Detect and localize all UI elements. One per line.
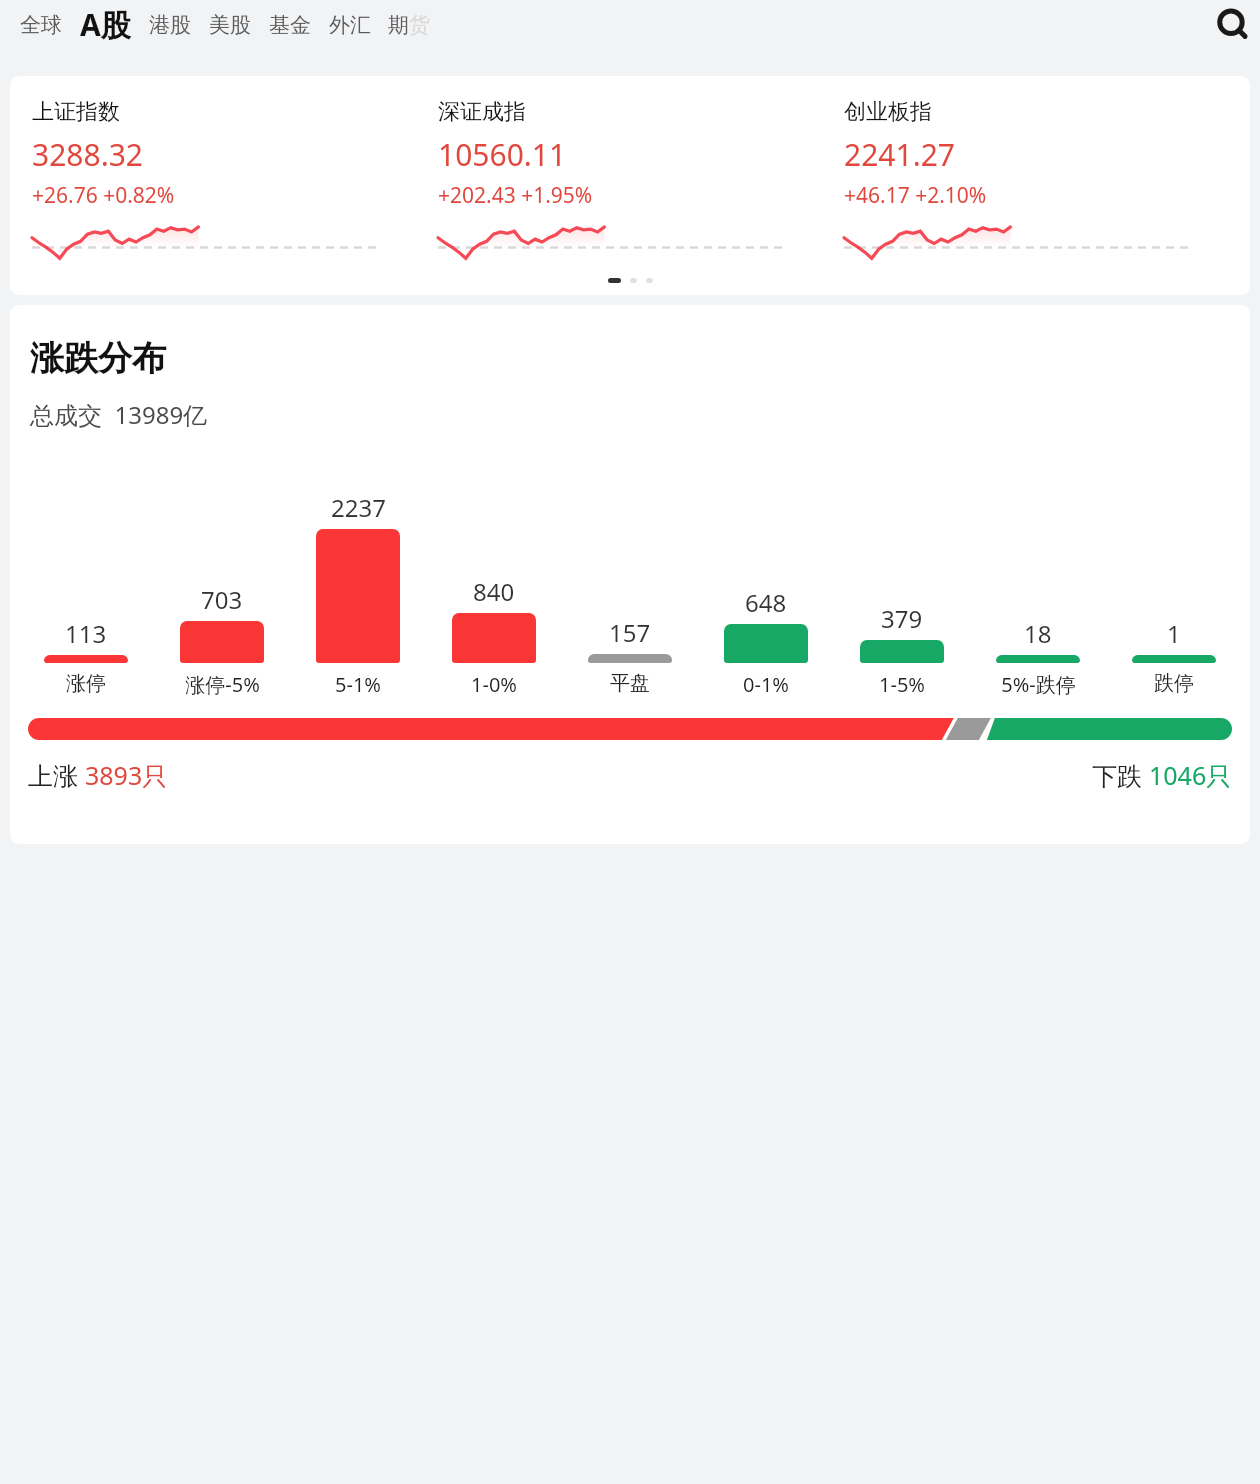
staticText: 上证指数 <box>32 98 120 126</box>
staticText: A股 <box>80 4 131 45</box>
staticText: +202.43 +1.95% <box>438 181 593 210</box>
button[interactable]: 港股 <box>140 8 200 42</box>
staticText: 货 <box>409 12 430 38</box>
staticText: +46.17 +2.10% <box>844 181 987 210</box>
button[interactable]: 基金 <box>260 8 320 42</box>
staticText: 涨跌分布 <box>30 337 166 380</box>
staticText: 下跌 <box>1092 758 1149 792</box>
staticText: 3893只 <box>85 758 168 792</box>
button[interactable]: 期 <box>380 12 438 38</box>
staticText: 648 <box>745 586 787 619</box>
staticText: 1-0% <box>471 671 517 698</box>
staticText: 港股 <box>149 12 191 38</box>
staticText: 2237 <box>331 491 386 524</box>
button[interactable]: 涨跌分布 <box>10 305 1250 844</box>
staticText: 2241.27 <box>844 134 955 175</box>
staticText: 1 <box>1167 617 1181 650</box>
staticText: 0-1% <box>743 671 789 698</box>
staticText: 157 <box>609 616 651 649</box>
staticText: 期 <box>388 12 409 38</box>
staticText: 外汇 <box>329 12 371 38</box>
staticText: 跌停 <box>1154 671 1194 696</box>
button[interactable]: 外汇 <box>320 8 380 42</box>
staticText: 上涨 <box>28 758 85 792</box>
button[interactable]: Search <box>1210 2 1256 48</box>
button[interactable]: 全球 <box>11 8 71 42</box>
staticText: 18 <box>1024 617 1052 650</box>
staticText: 涨停 <box>66 671 106 696</box>
staticText: 美股 <box>209 12 251 38</box>
staticText: 840 <box>473 575 515 608</box>
staticText: 113 <box>65 617 107 650</box>
staticText: 10560.11 <box>438 134 567 175</box>
button[interactable]: 上证指数 <box>10 76 1250 295</box>
button[interactable]: 美股 <box>200 8 260 42</box>
staticText: 平盘 <box>610 671 650 696</box>
staticText: 总成交 13989亿 <box>30 398 208 431</box>
button[interactable]: A股 <box>71 0 140 49</box>
staticText: 1046只 <box>1149 758 1232 792</box>
staticText: 涨停-5% <box>185 671 260 698</box>
staticText: 379 <box>881 602 923 635</box>
staticText: 创业板指 <box>844 98 932 126</box>
staticText: +26.76 +0.82% <box>32 181 175 210</box>
staticText: 全球 <box>20 12 62 38</box>
staticText: 5-1% <box>335 671 381 698</box>
staticText: 5%-跌停 <box>1001 671 1076 698</box>
staticText: 703 <box>201 583 243 616</box>
staticText: 1-5% <box>879 671 925 698</box>
staticText: 深证成指 <box>438 98 526 126</box>
staticText: 3288.32 <box>32 134 143 175</box>
staticText: 基金 <box>269 12 311 38</box>
